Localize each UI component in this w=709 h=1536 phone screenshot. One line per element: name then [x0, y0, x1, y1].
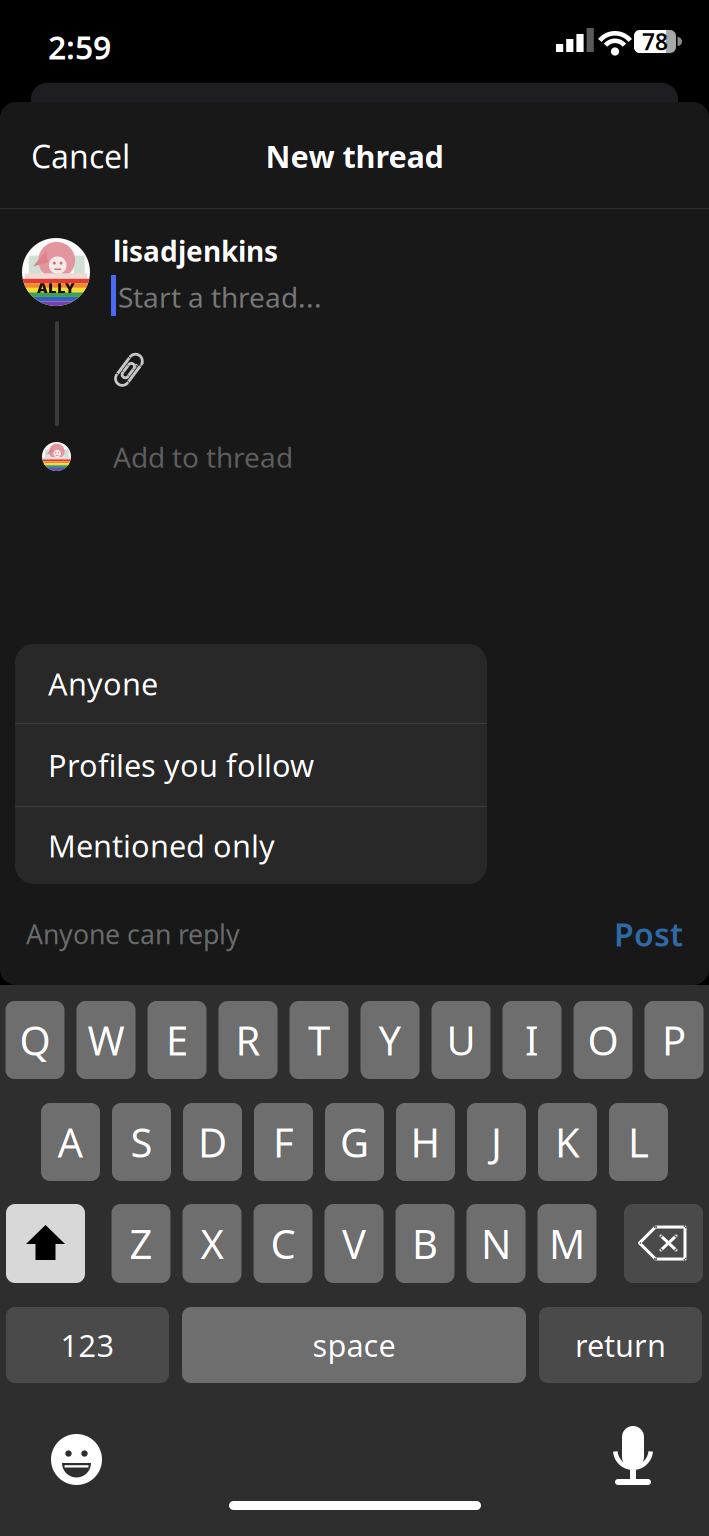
- staticText: I: [525, 1013, 539, 1066]
- button[interactable]: space: [182, 1307, 526, 1383]
- staticText: U: [446, 1013, 475, 1066]
- button[interactable]: B: [395, 1204, 454, 1283]
- button[interactable]: T: [289, 1001, 348, 1079]
- staticText: E: [166, 1013, 188, 1066]
- staticText: ALLY: [37, 278, 75, 297]
- staticText: Anyone: [48, 663, 158, 704]
- button[interactable]: L: [609, 1103, 668, 1181]
- button[interactable]: Add to thread: [113, 438, 513, 476]
- button[interactable]: G: [325, 1103, 384, 1181]
- button[interactable]: H: [396, 1103, 455, 1181]
- staticText: O: [587, 1013, 618, 1066]
- staticText: W: [87, 1013, 124, 1066]
- staticText: Q: [19, 1013, 50, 1066]
- staticText: Mentioned only: [48, 825, 275, 866]
- button[interactable]: U: [431, 1001, 490, 1079]
- button[interactable]: 123: [6, 1307, 169, 1383]
- staticText: S: [130, 1115, 152, 1168]
- button[interactable]: Y: [360, 1001, 419, 1079]
- staticText: V: [342, 1217, 366, 1270]
- staticText: J: [491, 1115, 502, 1168]
- button[interactable]: Attach media: [108, 350, 152, 394]
- staticText: Y: [378, 1013, 401, 1066]
- staticText: R: [235, 1013, 260, 1066]
- staticText: N: [481, 1217, 511, 1270]
- staticText: return: [575, 1325, 666, 1365]
- staticText: B: [412, 1217, 438, 1270]
- staticText: Add to thread: [113, 438, 293, 476]
- button[interactable]: return: [539, 1307, 702, 1383]
- button[interactable]: Dictate: [607, 1426, 659, 1486]
- staticText: L: [628, 1115, 649, 1168]
- button[interactable]: Shift: [6, 1204, 85, 1283]
- staticText: G: [340, 1115, 369, 1168]
- button[interactable]: W: [76, 1001, 135, 1079]
- button[interactable]: Cancel: [0, 104, 230, 208]
- staticText: Cancel: [31, 135, 130, 177]
- button[interactable]: M: [537, 1204, 596, 1283]
- button[interactable]: Post: [614, 913, 683, 955]
- staticText: F: [273, 1115, 294, 1168]
- staticText: Z: [129, 1217, 152, 1270]
- button[interactable]: Q: [5, 1001, 64, 1079]
- staticText: C: [270, 1217, 295, 1270]
- staticText: New thread: [265, 136, 443, 176]
- staticText: A: [57, 1115, 83, 1168]
- button[interactable]: Profiles you follow: [15, 745, 487, 785]
- staticText: H: [410, 1115, 440, 1168]
- button[interactable]: F: [254, 1103, 313, 1181]
- button[interactable]: I: [502, 1001, 561, 1079]
- staticText: X: [200, 1217, 223, 1270]
- button[interactable]: Delete: [624, 1204, 703, 1283]
- staticText: 2:59: [48, 26, 111, 68]
- staticText: lisadjenkins: [113, 232, 278, 270]
- button[interactable]: E: [147, 1001, 206, 1079]
- staticText: Anyone can reply: [26, 916, 240, 952]
- staticText: Profiles you follow: [48, 745, 314, 785]
- staticText: P: [662, 1013, 686, 1066]
- button[interactable]: O: [573, 1001, 632, 1079]
- button[interactable]: K: [538, 1103, 597, 1181]
- staticText: space: [312, 1325, 395, 1365]
- button[interactable]: Emoji keyboard: [51, 1434, 102, 1485]
- staticText: T: [308, 1013, 330, 1066]
- button[interactable]: D: [183, 1103, 242, 1181]
- button[interactable]: P: [644, 1001, 703, 1079]
- staticText: Start a thread...: [118, 278, 322, 316]
- staticText: 78: [642, 26, 668, 56]
- button[interactable]: Z: [111, 1204, 170, 1283]
- button[interactable]: C: [253, 1204, 312, 1283]
- button[interactable]: X: [182, 1204, 241, 1283]
- button[interactable]: N: [466, 1204, 525, 1283]
- button[interactable]: V: [324, 1204, 383, 1283]
- staticText: Post: [614, 913, 683, 955]
- button[interactable]: R: [218, 1001, 277, 1079]
- staticText: M: [549, 1217, 585, 1270]
- button[interactable]: A: [41, 1103, 100, 1181]
- button[interactable]: Anyone: [15, 663, 487, 704]
- staticText: K: [555, 1115, 580, 1168]
- button[interactable]: S: [112, 1103, 171, 1181]
- staticText: D: [198, 1115, 227, 1168]
- staticText: 123: [60, 1325, 114, 1365]
- button[interactable]: J: [467, 1103, 526, 1181]
- button[interactable]: Mentioned only: [15, 825, 487, 866]
